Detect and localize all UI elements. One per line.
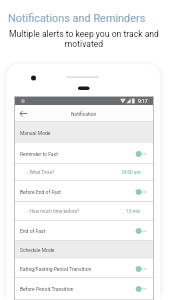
staticText: Notifications and Reminders: [8, 12, 146, 25]
button[interactable]: Toggle: [135, 284, 147, 294]
button[interactable]: Back: [15, 105, 32, 122]
staticText: Eating/Fasting Period Transition: [20, 266, 135, 272]
button[interactable]: Toggle: [135, 187, 147, 197]
staticText: 15 min: [126, 209, 141, 215]
button[interactable]: Before End of Fast: [15, 181, 153, 202]
staticText: Reminder to Fast: [20, 151, 135, 157]
button[interactable]: Eating/Fasting Period Transition: [15, 259, 153, 278]
staticText: Notification: [71, 111, 97, 117]
button[interactable]: Toggle: [135, 264, 147, 274]
staticText: Schedule Mode: [20, 247, 55, 253]
button[interactable]: Before Period Transition: [15, 278, 153, 300]
staticText: 9:17: [138, 98, 148, 104]
staticText: - What Time?: [27, 170, 121, 176]
staticText: Manual Mode: [20, 130, 51, 136]
button[interactable]: End of Fast: [15, 221, 153, 241]
staticText: Before Period Transition: [20, 286, 135, 292]
button[interactable]: - How much time before?: [15, 202, 153, 221]
staticText: Before End of Fast: [20, 189, 135, 195]
staticText: Multiple alerts to keep you on track and…: [8, 29, 160, 49]
button[interactable]: Toggle: [135, 149, 147, 159]
button[interactable]: Toggle: [135, 226, 147, 236]
button[interactable]: Reminder to Fast: [15, 143, 153, 164]
staticText: - How much time before?: [27, 209, 126, 215]
staticText: End of Fast: [20, 228, 135, 234]
button[interactable]: - What Time?: [15, 164, 153, 181]
staticText: 10:00 am: [121, 170, 141, 176]
